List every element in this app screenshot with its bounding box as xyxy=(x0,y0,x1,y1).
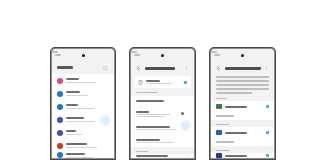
button[interactable]: Search xyxy=(101,64,109,72)
button[interactable] xyxy=(52,139,114,152)
other: More options xyxy=(184,66,189,71)
button[interactable] xyxy=(131,121,194,134)
button[interactable] xyxy=(131,154,194,158)
other: More options xyxy=(264,66,269,71)
button[interactable]: More options xyxy=(263,65,270,72)
button[interactable]: More options xyxy=(183,65,190,72)
other: Back xyxy=(216,66,221,71)
button[interactable]: Back xyxy=(215,65,222,72)
button[interactable] xyxy=(52,74,114,87)
button[interactable] xyxy=(180,111,189,116)
button[interactable] xyxy=(52,100,114,113)
button[interactable] xyxy=(131,106,194,121)
button[interactable] xyxy=(211,127,274,138)
button[interactable] xyxy=(52,152,114,158)
button[interactable] xyxy=(52,126,114,139)
button[interactable] xyxy=(131,96,194,106)
button[interactable]: Back xyxy=(135,65,142,72)
button[interactable] xyxy=(211,101,274,112)
button[interactable] xyxy=(211,153,274,158)
button[interactable] xyxy=(52,87,114,100)
other: Search xyxy=(103,66,108,71)
button[interactable] xyxy=(131,134,194,147)
other: Back xyxy=(136,66,141,71)
button[interactable] xyxy=(52,113,114,126)
button[interactable] xyxy=(134,76,191,88)
